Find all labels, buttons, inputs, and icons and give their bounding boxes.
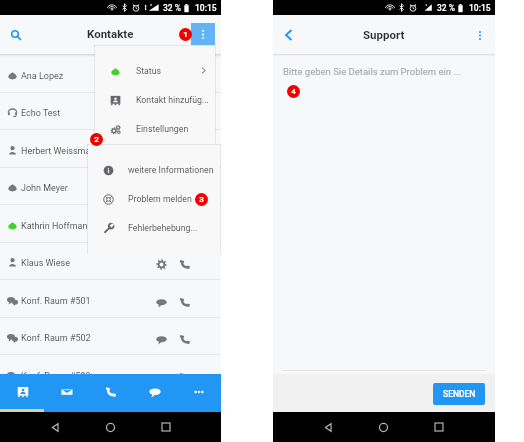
- button[interactable]: Konf. Raum #502: [0, 317, 221, 355]
- button[interactable]: Fehlerbehebung...: [88, 213, 220, 242]
- button[interactable]: Zurück: [38, 412, 72, 442]
- staticText: 1: [183, 30, 188, 39]
- button[interactable]: Startbildschirm: [93, 412, 127, 442]
- staticText: SENDEN: [443, 389, 476, 399]
- staticText: 2: [94, 135, 99, 144]
- button[interactable]: Chat: [153, 331, 169, 347]
- staticText: Bitte geben Sie Details zum Problem ein …: [283, 66, 461, 77]
- staticText: Konf. Raum #502: [21, 333, 91, 344]
- button[interactable]: Problem melden: [88, 184, 220, 213]
- button[interactable]: Mehr Optionen: [191, 23, 215, 45]
- button[interactable]: Kontakt hinzufüg...: [95, 85, 215, 114]
- staticText: John Meyer: [21, 183, 68, 194]
- button[interactable]: Übersicht: [149, 412, 183, 442]
- staticText: Kontakte: [87, 27, 134, 40]
- staticText: Support: [363, 28, 405, 41]
- button[interactable]: Status: [95, 56, 215, 85]
- button[interactable]: Anrufen: [177, 331, 193, 347]
- staticText: Kathrin Hoffmann: [21, 221, 93, 232]
- button[interactable]: Zurück: [277, 23, 300, 46]
- button[interactable]: Konf. Raum #503: [0, 355, 221, 393]
- staticText: Status: [136, 66, 162, 76]
- button[interactable]: Einstellungen: [95, 114, 215, 143]
- staticText: 3: [199, 195, 204, 204]
- button[interactable]: Chat: [133, 374, 177, 409]
- button[interactable]: Konf. Raum #501: [0, 280, 221, 318]
- button[interactable]: Anrufen: [177, 294, 193, 310]
- button[interactable]: Ana Lopez: [0, 55, 221, 93]
- staticText: 4: [291, 87, 296, 96]
- staticText: 10:15: [469, 3, 491, 13]
- button[interactable]: Kathrin Hoffmann: [0, 205, 221, 243]
- staticText: 32 %: [437, 3, 456, 13]
- button[interactable]: Startbildschirm: [366, 412, 400, 442]
- staticText: Konf. Raum #503: [21, 371, 91, 382]
- button[interactable]: Einstellungen: [153, 256, 169, 272]
- button[interactable]: Anrufe: [89, 374, 133, 409]
- button[interactable]: Chat: [153, 294, 169, 310]
- button[interactable]: Klaus Wiese: [0, 242, 221, 280]
- staticText: 32 %: [163, 3, 182, 13]
- button[interactable]: Echo Test: [0, 92, 221, 130]
- staticText: Fehlerbehebung...: [128, 223, 198, 233]
- button[interactable]: Anrufen: [177, 256, 193, 272]
- staticText: Einstellungen: [136, 124, 189, 134]
- button[interactable]: Suchen: [4, 23, 27, 46]
- button[interactable]: Zurück: [311, 412, 345, 442]
- staticText: Echo Test: [21, 108, 61, 119]
- button[interactable]: Herbert Weissmann: [0, 130, 221, 168]
- button[interactable]: Übersicht: [422, 412, 456, 442]
- button[interactable]: Anrufen: [177, 369, 193, 385]
- staticText: Klaus Wiese: [21, 258, 70, 269]
- staticText: Ana Lopez: [21, 71, 64, 82]
- staticText: Kontakt hinzufüg...: [136, 95, 209, 105]
- staticText: Konf. Raum #501: [21, 296, 91, 307]
- button[interactable]: John Meyer: [0, 167, 221, 205]
- button[interactable]: Mehr: [177, 374, 221, 409]
- button[interactable]: Kontakte: [0, 374, 45, 409]
- staticText: weitere Informationen: [128, 165, 214, 175]
- staticText: 10:15: [195, 3, 217, 13]
- staticText: Herbert Weissmann: [21, 146, 101, 157]
- button[interactable]: Mehr Optionen: [470, 25, 490, 45]
- staticText: Problem melden: [128, 194, 192, 204]
- button[interactable]: Chat: [153, 369, 169, 385]
- button[interactable]: weitere Informationen: [88, 155, 220, 184]
- button[interactable]: SENDEN: [433, 383, 485, 405]
- button[interactable]: Nachrichten: [45, 374, 89, 409]
